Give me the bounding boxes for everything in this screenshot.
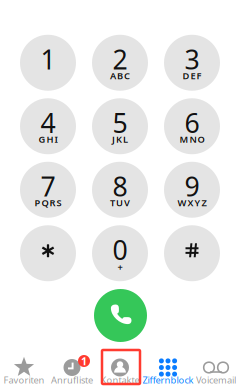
staticText: G H I — [38, 133, 57, 145]
staticText: 1 — [81, 354, 87, 368]
button[interactable]: Number sign — [164, 225, 220, 281]
staticText: + — [117, 261, 122, 273]
button[interactable]: Kontakte — [96, 352, 144, 390]
staticText: 9 — [184, 168, 199, 204]
staticText: Favoriten — [3, 374, 44, 386]
button[interactable]: Star — [20, 225, 76, 281]
staticText: 4 — [40, 105, 55, 140]
staticText: P Q R S — [34, 197, 61, 209]
staticText: Ziffernblock — [142, 374, 193, 386]
button[interactable]: Favoriten — [0, 352, 48, 390]
button[interactable]: 7 — [20, 162, 76, 218]
button[interactable]: 6 — [164, 98, 220, 154]
staticText: 6 — [184, 105, 199, 140]
button[interactable]: 2 — [92, 35, 148, 91]
staticText: A B C — [110, 70, 130, 82]
button[interactable]: 9 — [164, 162, 220, 218]
staticText: Voicemail — [196, 374, 236, 386]
button[interactable]: 0 — [92, 225, 148, 281]
staticText: 2 — [112, 41, 127, 77]
staticText: W X Y Z — [177, 197, 206, 209]
button[interactable]: 4 — [20, 98, 76, 154]
button[interactable]: Voicemail — [192, 352, 240, 390]
button[interactable]: Call — [94, 289, 147, 342]
staticText: 8 — [112, 168, 127, 204]
staticText: 1 — [40, 41, 55, 77]
button[interactable]: 5 — [92, 98, 148, 154]
button[interactable]: 8 — [92, 162, 148, 218]
staticText: T U V — [110, 197, 130, 209]
button[interactable]: Anrufliste — [48, 352, 96, 390]
button[interactable]: 1 — [20, 35, 76, 91]
staticText: 0 — [112, 232, 127, 267]
staticText: M N O — [179, 133, 204, 145]
button[interactable]: Ziffernblock — [144, 352, 192, 390]
staticText: 5 — [112, 105, 127, 140]
staticText: J K L — [112, 133, 128, 145]
button[interactable]: 3 — [164, 35, 220, 91]
staticText: Anrufliste — [51, 374, 93, 386]
staticText: Kontakte — [100, 374, 139, 386]
staticText: 7 — [40, 168, 55, 204]
staticText: D E F — [182, 70, 201, 82]
staticText: 3 — [184, 41, 199, 77]
